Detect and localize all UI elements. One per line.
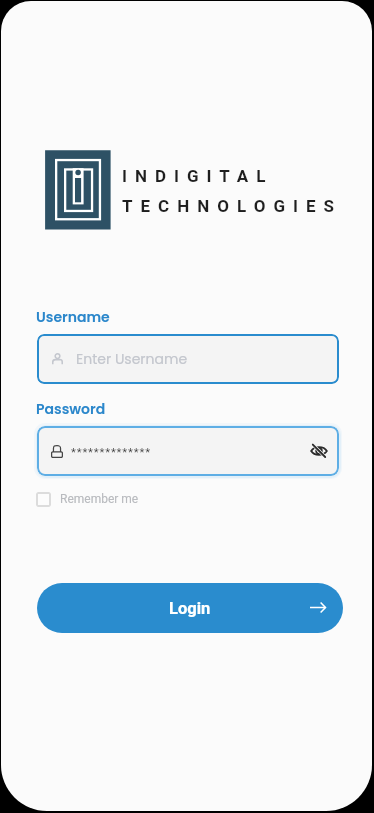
button[interactable]: Enter Username (37, 334, 339, 384)
button[interactable]: ************** (37, 426, 339, 476)
button[interactable]: Login (37, 583, 343, 633)
staticText: Login (169, 599, 211, 618)
staticText: Username (36, 307, 110, 327)
staticText: ************** (71, 445, 151, 458)
button[interactable]: Toggle password visibility (303, 435, 335, 467)
staticText: TECHNOLOGIES (122, 196, 342, 216)
staticText: Password (36, 399, 106, 419)
button[interactable]: Remember me (36, 491, 139, 507)
staticText: Enter Username (76, 349, 188, 369)
staticText: Remember me (60, 492, 139, 506)
staticText: INDIGITAL (122, 166, 274, 186)
